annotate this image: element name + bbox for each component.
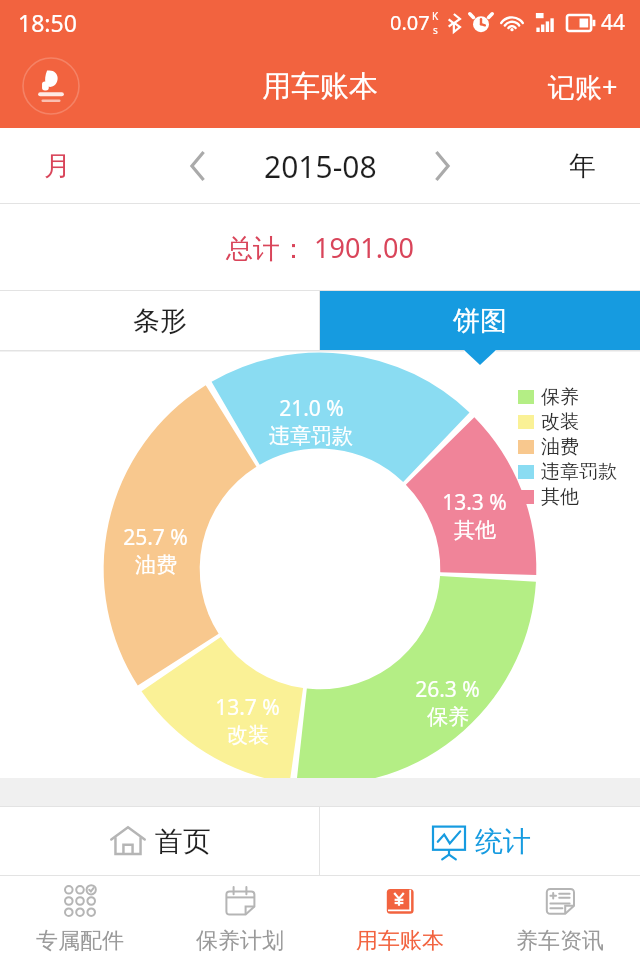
staticText: 专属配件 <box>36 927 124 955</box>
button[interactable]: 养车资讯 <box>480 876 640 960</box>
button[interactable]: 统计 <box>320 807 640 875</box>
staticText: 13.7 % <box>215 693 280 722</box>
staticText: 记账+ <box>548 68 618 105</box>
staticText: 2015-08 <box>264 146 377 187</box>
staticText: 油费 <box>541 435 579 459</box>
staticText: 条形 <box>133 304 187 338</box>
staticText: 保养 <box>427 704 469 730</box>
staticText: 其他 <box>541 485 579 509</box>
staticText: 21.0 % <box>279 394 344 423</box>
staticText: 保养 <box>541 385 579 409</box>
staticText: 其他 <box>454 517 496 543</box>
staticText: 18:50 <box>18 7 77 38</box>
button[interactable]: 饼图 <box>320 291 640 350</box>
button[interactable]: 年 <box>525 135 640 197</box>
staticText: 违章罚款 <box>541 460 617 484</box>
staticText: 0.07 <box>390 9 430 36</box>
staticText: 用车账本 <box>262 68 378 105</box>
staticText: K <box>432 9 439 23</box>
button[interactable]: 月 <box>0 135 115 197</box>
staticText: 25.7 % <box>123 523 188 552</box>
button[interactable]: 用车账本 <box>320 876 480 960</box>
staticText: 年 <box>569 149 596 183</box>
staticText: 月 <box>44 149 71 183</box>
button[interactable]: 条形 <box>0 291 319 350</box>
staticText: 保养计划 <box>196 927 284 955</box>
staticText: s <box>433 23 438 37</box>
staticText: 44 <box>601 8 626 37</box>
button[interactable]: Logo <box>22 57 80 115</box>
staticText: 违章罚款 <box>269 423 353 449</box>
staticText: 改装 <box>227 722 269 748</box>
button[interactable]: 记账+ <box>526 52 640 121</box>
staticText: 13.3 % <box>442 488 507 517</box>
button[interactable]: 专属配件 <box>0 876 160 960</box>
staticText: 总计： 1901.00 <box>226 229 414 266</box>
button[interactable]: Next month <box>415 139 469 193</box>
staticText: 用车账本 <box>356 927 444 955</box>
button[interactable]: 首页 <box>0 807 319 875</box>
staticText: 养车资讯 <box>516 927 604 955</box>
button[interactable]: Previous month <box>171 139 225 193</box>
button[interactable]: 保养计划 <box>160 876 320 960</box>
staticText: 饼图 <box>453 304 507 338</box>
staticText: 首页 <box>155 824 211 859</box>
staticText: 26.3 % <box>415 675 480 704</box>
staticText: 改装 <box>541 410 579 434</box>
staticText: 统计 <box>475 824 531 859</box>
staticText: 油费 <box>135 552 177 578</box>
